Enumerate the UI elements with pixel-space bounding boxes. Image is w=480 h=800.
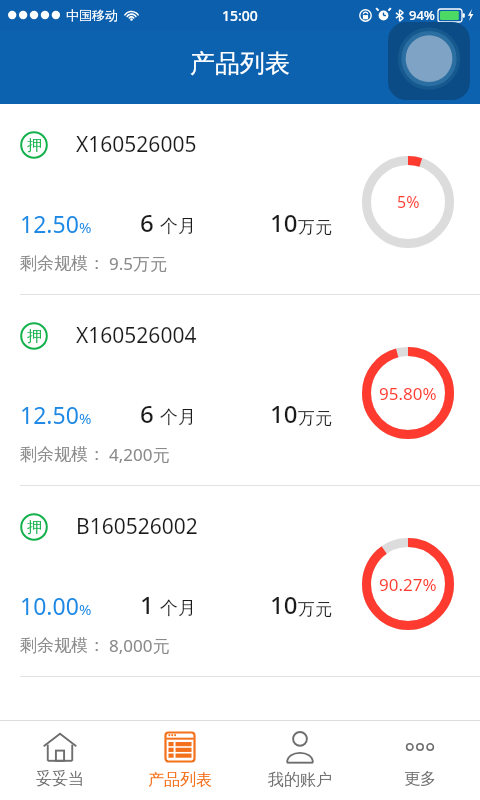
staticText: 剩余规模： [20,253,105,274]
staticText: 中国移动 [66,7,118,23]
staticText: 个月 [160,597,196,620]
staticText: 万元 [298,408,332,429]
staticText: 8,000元 [109,634,170,657]
staticText: 产品列表 [148,770,212,790]
staticText: 10.00 [20,590,79,621]
staticText: 4,200元 [109,443,170,466]
staticText: 万元 [298,217,332,238]
staticText: 12.50 [20,208,79,239]
staticText: 押 [27,518,42,537]
button[interactable]: 押 [0,295,480,486]
button[interactable]: 押 [0,486,480,677]
staticText: 个月 [160,406,196,429]
staticText: 90.27% [379,573,437,596]
staticText: 产品列表 [190,48,290,79]
staticText: 9.5万元 [109,252,168,275]
staticText: 5% [397,191,420,213]
button[interactable]: 更多 [360,721,480,800]
button[interactable]: AssistiveTouch [388,22,470,100]
staticText: 12.50 [20,399,79,430]
staticText: X160526005 [76,130,197,159]
staticText: 妥妥当 [36,769,84,789]
staticText: B160526002 [76,512,198,541]
staticText: % [79,408,92,428]
button[interactable]: 产品列表 [120,721,240,800]
staticText: 剩余规模： [20,635,105,656]
button[interactable]: 我的账户 [240,721,360,800]
staticText: 押 [27,136,42,155]
staticText: 95.80% [379,382,437,405]
staticText: 更多 [404,769,436,789]
staticText: 个月 [160,215,196,238]
staticText: 押 [27,327,42,346]
staticText: % [79,217,92,237]
staticText: 10 [270,206,298,239]
staticText: 6 [140,206,154,239]
staticText: 万元 [298,599,332,620]
staticText: % [79,599,92,619]
staticText: 6 [140,397,154,430]
staticText: X160526004 [76,321,197,350]
staticText: 10 [270,588,298,621]
staticText: 1 [140,588,154,621]
staticText: 15:00 [222,6,258,25]
button[interactable]: 妥妥当 [0,721,120,800]
staticText: 我的账户 [268,770,332,790]
button[interactable]: 押 [0,104,480,295]
staticText: 10 [270,397,298,430]
staticText: 94% [409,6,435,24]
staticText: 剩余规模： [20,444,105,465]
